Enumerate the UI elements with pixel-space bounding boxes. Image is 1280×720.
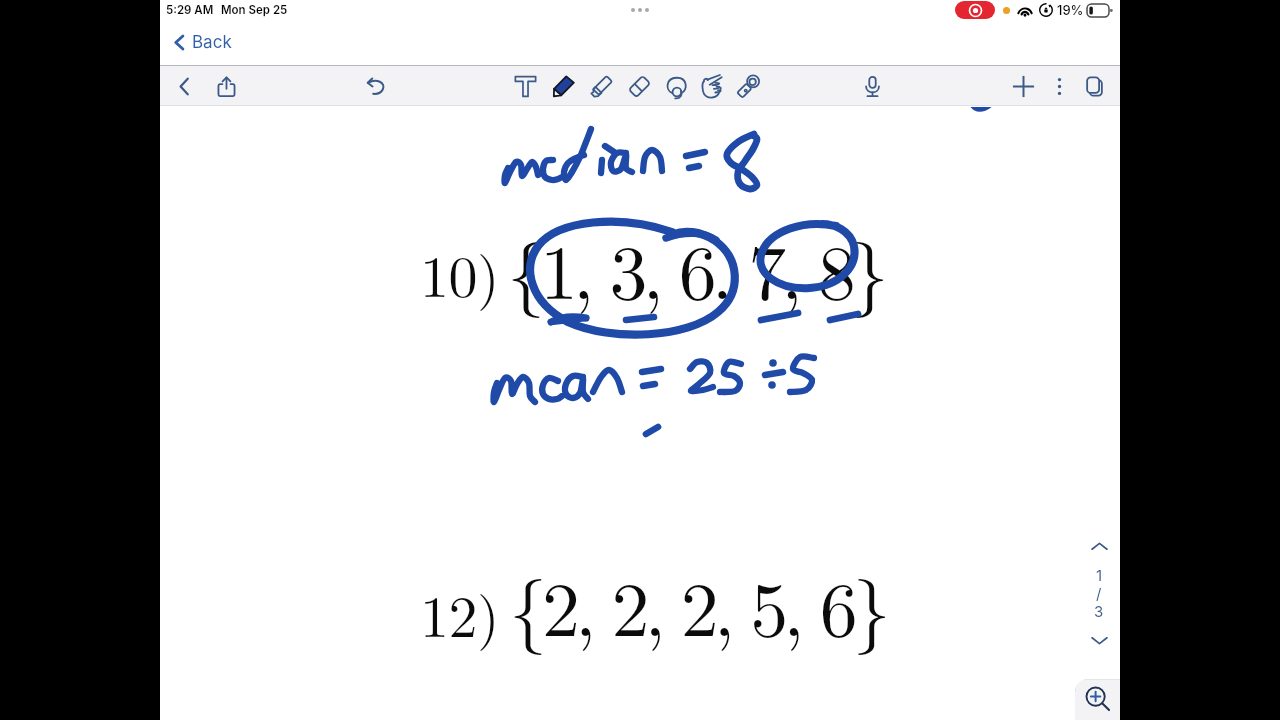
button[interactable]: Zoom in <box>1075 679 1120 720</box>
staticText: 1 <box>1096 566 1103 584</box>
button[interactable]: Back <box>168 70 200 102</box>
button[interactable]: Eraser <box>623 70 655 102</box>
button[interactable]: Add <box>1007 70 1039 102</box>
staticText: Back <box>192 32 232 53</box>
staticText: {2, 2, 2, 5, 6} <box>509 550 886 658</box>
button[interactable]: Laser pointer <box>732 70 764 102</box>
staticText: / <box>1096 584 1102 602</box>
staticText: 19% <box>1057 2 1084 18</box>
staticText: Mon Sep 25 <box>221 3 288 17</box>
button[interactable]: Pages <box>1078 70 1110 102</box>
button[interactable]: Next page <box>1084 625 1114 655</box>
button[interactable]: Undo <box>359 70 391 102</box>
staticText: 10) <box>420 232 500 314</box>
button[interactable]: Highlighter <box>585 70 617 102</box>
button[interactable]: Previous page <box>1084 531 1114 561</box>
staticText: 12) <box>420 572 500 654</box>
button[interactable]: Share <box>210 70 242 102</box>
button[interactable]: Back <box>167 28 236 57</box>
button[interactable]: Lasso <box>660 70 692 102</box>
button[interactable]: Pen tool <box>547 70 579 102</box>
staticText: {1, 3, 6, 7, 8} <box>507 213 884 321</box>
staticText: 3 <box>1094 602 1104 620</box>
button[interactable]: Text tool <box>509 70 541 102</box>
button[interactable]: More options <box>1043 70 1075 102</box>
staticText: 5:29 AM <box>166 3 214 17</box>
button[interactable]: Record audio <box>856 70 888 102</box>
button[interactable]: Hand <box>696 70 728 102</box>
button[interactable]: Stop recording <box>955 1 995 19</box>
